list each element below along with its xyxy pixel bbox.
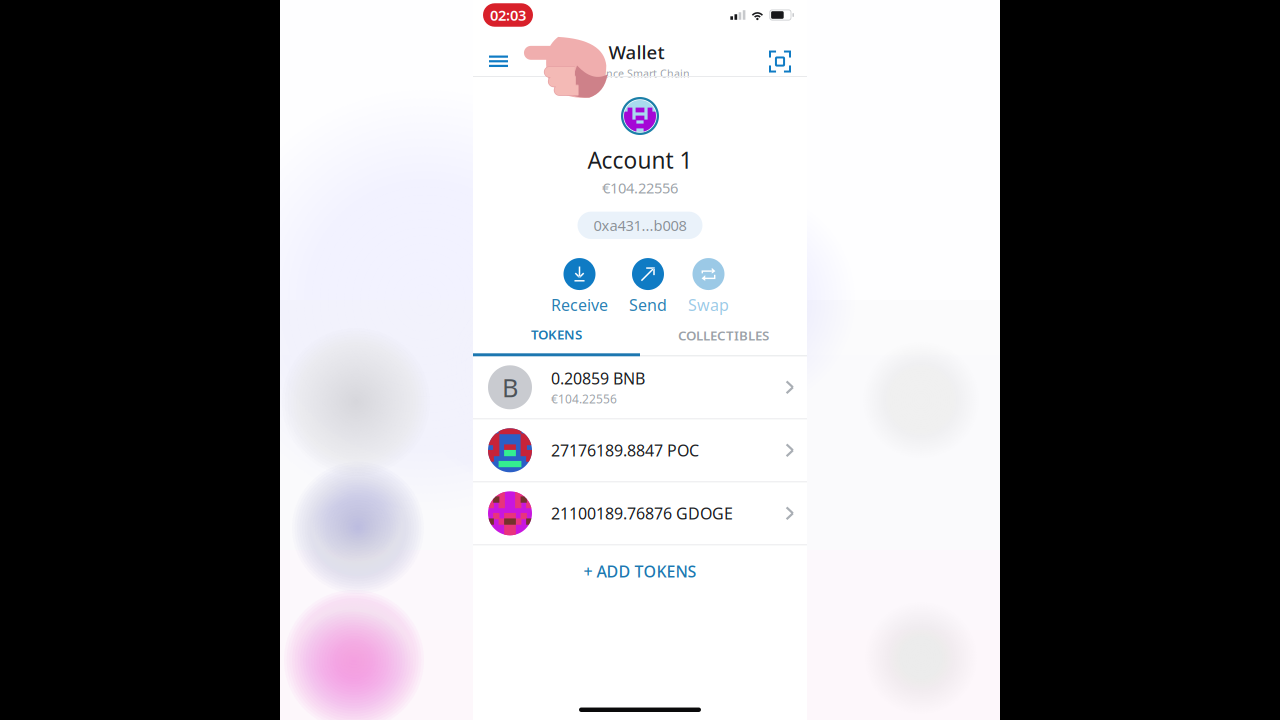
button[interactable]: Menu	[473, 25, 518, 71]
button[interactable]: Send	[629, 258, 667, 315]
staticText: Binance Smart Chain	[583, 66, 690, 80]
staticText: 02:03	[490, 5, 526, 25]
button[interactable]: + ADD TOKENS	[473, 545, 807, 597]
staticText: COLLECTIBLES	[678, 326, 769, 344]
staticText: B	[502, 370, 518, 404]
staticText: Send	[629, 294, 667, 315]
button[interactable]: Swap	[688, 258, 729, 315]
staticText: TOKENS	[531, 325, 582, 343]
button[interactable]: Scan QR code	[755, 25, 807, 72]
staticText: 21100189.76876 GDOGE	[551, 503, 733, 524]
staticText: Wallet	[608, 39, 664, 64]
button[interactable]: B	[473, 356, 807, 418]
staticText: Receive	[551, 294, 608, 315]
button[interactable]: 0xa431...b008	[577, 212, 702, 239]
staticText: 27176189.8847 POC	[551, 440, 699, 461]
staticText: 0.20859 BNB	[551, 368, 645, 389]
staticText: Account 1	[587, 145, 692, 175]
staticText: + ADD TOKENS	[583, 561, 696, 582]
button[interactable]: Receive	[551, 258, 608, 315]
button[interactable]: 21100189.76876 GDOGE	[473, 482, 807, 544]
staticText: €104.22556	[551, 391, 617, 407]
staticText: €104.22556	[602, 178, 678, 198]
staticText: 0xa431...b008	[593, 216, 686, 235]
staticText: Swap	[688, 294, 729, 315]
button[interactable]: COLLECTIBLES	[640, 320, 807, 356]
button[interactable]: 27176189.8847 POC	[473, 419, 807, 481]
button[interactable]: TOKENS	[473, 320, 640, 356]
